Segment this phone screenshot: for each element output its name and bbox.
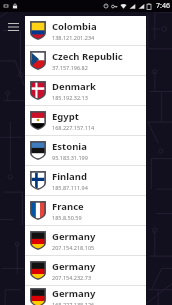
staticText: 7:46 xyxy=(156,1,170,11)
button[interactable]: Open navigation menu xyxy=(3,17,23,37)
button[interactable]: Colombia xyxy=(25,16,146,45)
staticText: Denmark xyxy=(52,80,96,93)
staticText: 185.192.32.13 xyxy=(52,94,88,101)
staticText: 185.8.50.59 xyxy=(52,214,82,221)
staticText: 37.157.196.82 xyxy=(52,64,88,71)
button[interactable]: Egypt xyxy=(25,106,146,135)
staticText: 95.183.31.199 xyxy=(52,154,88,161)
staticText: 185.87.111.94 xyxy=(52,184,88,191)
button[interactable]: Czech Republic xyxy=(25,46,146,75)
button[interactable]: Estonia xyxy=(25,136,146,165)
button[interactable]: Finland xyxy=(25,166,146,195)
staticText: 138.121.201.234 xyxy=(52,34,95,41)
staticText: Colombia xyxy=(52,20,97,33)
button[interactable]: Germany xyxy=(25,286,146,305)
staticText: Germany xyxy=(52,287,96,300)
staticText: 207.154.232.73 xyxy=(52,274,92,281)
staticText: Egypt xyxy=(52,110,79,123)
button[interactable]: Denmark xyxy=(25,76,146,105)
staticText: 207.154.218.105 xyxy=(52,244,95,251)
button[interactable]: Germany xyxy=(25,256,146,285)
staticText: Czech Republic xyxy=(52,50,123,63)
button[interactable]: Germany xyxy=(25,226,146,255)
staticText: 168.227.157.114 xyxy=(52,124,95,131)
button[interactable]: France xyxy=(25,196,146,225)
staticText: Germany xyxy=(52,260,96,273)
staticText: 168.227.138.126 xyxy=(52,301,95,305)
staticText: France xyxy=(52,200,84,213)
staticText: Estonia xyxy=(52,140,87,153)
staticText: Germany xyxy=(52,230,96,243)
staticText: Finland xyxy=(52,170,87,183)
